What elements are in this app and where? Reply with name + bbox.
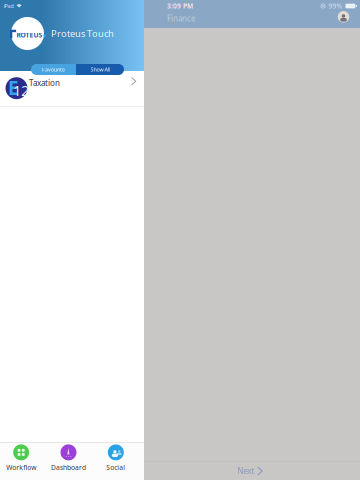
staticText: Finance — [167, 13, 196, 24]
button[interactable]: Social — [92, 443, 139, 480]
button[interactable]: Workflow — [0, 443, 45, 480]
button[interactable]: Account — [333, 7, 353, 27]
staticText: Taxation — [29, 78, 60, 88]
staticText: Favourite — [42, 66, 65, 73]
button[interactable]: E — [0, 71, 144, 106]
staticText: Workflow — [6, 463, 36, 472]
staticText: E — [8, 75, 18, 100]
staticText: 99% — [328, 2, 342, 10]
staticText: iPad — [4, 2, 14, 10]
staticText: 12 — [13, 80, 29, 100]
staticText: Dashboard — [51, 463, 86, 472]
staticText: Social — [106, 463, 125, 472]
staticText: 3:09 PM — [167, 2, 193, 10]
button[interactable]: Show All — [76, 64, 124, 75]
staticText: ROTEUS — [17, 31, 43, 39]
button[interactable]: Dashboard — [45, 443, 92, 480]
staticText: Next — [237, 466, 254, 476]
button[interactable]: Favourite — [31, 64, 76, 75]
staticText: Show All — [90, 66, 109, 73]
staticText: Proteus Touch — [51, 27, 114, 40]
button[interactable]: Next — [228, 462, 276, 479]
